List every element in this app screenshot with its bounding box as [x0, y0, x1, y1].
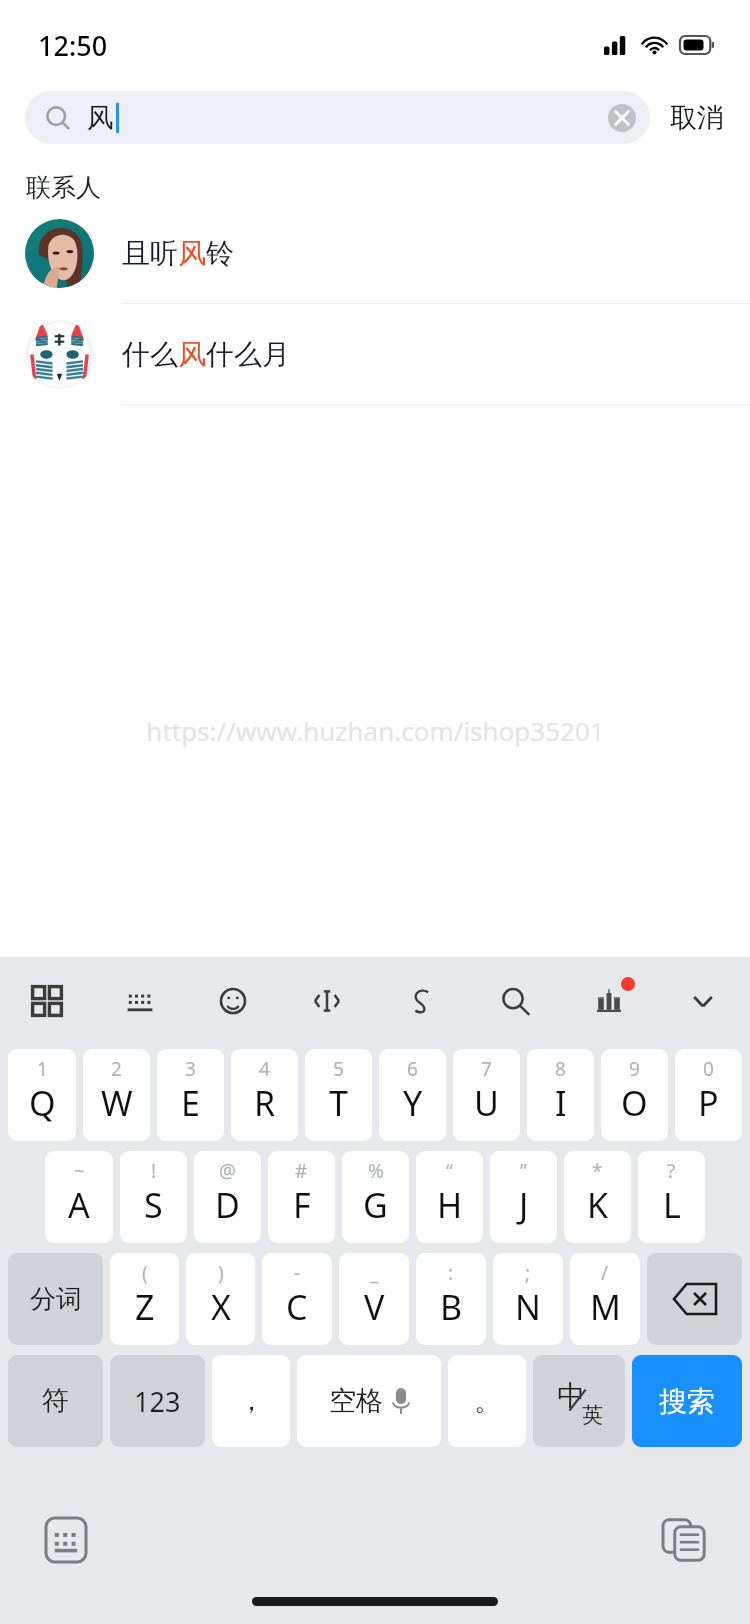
- staticText: U: [474, 1080, 499, 1126]
- staticText: 符: [42, 1384, 69, 1418]
- staticText: S: [144, 1182, 163, 1228]
- button[interactable]: Switch keyboard: [40, 1514, 92, 1566]
- staticText: 7: [481, 1056, 492, 1082]
- staticText: H: [437, 1182, 463, 1228]
- button[interactable]: 2: [83, 1049, 150, 1141]
- staticText: 且听风铃: [122, 236, 234, 271]
- button[interactable]: (: [110, 1253, 179, 1345]
- staticText: 中: [557, 1378, 585, 1413]
- staticText: G: [363, 1182, 388, 1228]
- button[interactable]: :: [416, 1253, 486, 1345]
- button[interactable]: #: [268, 1151, 335, 1243]
- staticText: 空格: [329, 1384, 383, 1418]
- button[interactable]: _: [339, 1253, 409, 1345]
- button[interactable]: -: [262, 1253, 332, 1345]
- staticText: T: [329, 1080, 348, 1126]
- staticText: 搜索: [659, 1384, 715, 1419]
- button[interactable]: @: [194, 1151, 261, 1243]
- button[interactable]: Clipboard: [658, 1514, 710, 1566]
- button[interactable]: Theme: [562, 957, 656, 1045]
- button[interactable]: 符: [8, 1355, 103, 1447]
- button[interactable]: ?: [638, 1151, 705, 1243]
- staticText: 2: [111, 1056, 122, 1082]
- staticText: !: [151, 1158, 157, 1184]
- button[interactable]: Emoji: [186, 957, 280, 1045]
- staticText: :: [448, 1260, 454, 1286]
- staticText: J: [519, 1182, 529, 1228]
- button[interactable]: 什么风什么月: [0, 304, 750, 405]
- staticText: @: [219, 1158, 237, 1184]
- button[interactable]: 5: [305, 1049, 372, 1141]
- button[interactable]: 风: [25, 91, 650, 144]
- staticText: 4: [259, 1056, 270, 1082]
- staticText: ?: [667, 1158, 676, 1184]
- button[interactable]: 且听风铃: [0, 203, 750, 304]
- staticText: Y: [403, 1080, 423, 1126]
- button[interactable]: 4: [231, 1049, 298, 1141]
- button[interactable]: Grid: [0, 957, 93, 1045]
- staticText: E: [181, 1080, 200, 1126]
- button[interactable]: 6: [379, 1049, 446, 1141]
- button[interactable]: ~: [45, 1151, 113, 1243]
- staticText: #: [295, 1158, 308, 1184]
- button[interactable]: ”: [490, 1151, 557, 1243]
- button[interactable]: %: [342, 1151, 409, 1243]
- button[interactable]: Clear text: [600, 96, 644, 140]
- button[interactable]: 9: [601, 1049, 668, 1141]
- button[interactable]: ，: [212, 1355, 290, 1447]
- button[interactable]: 。: [448, 1355, 526, 1447]
- staticText: R: [254, 1080, 276, 1126]
- button[interactable]: ;: [493, 1253, 563, 1345]
- staticText: 0: [703, 1056, 714, 1082]
- button[interactable]: ): [186, 1253, 255, 1345]
- staticText: P: [698, 1080, 719, 1126]
- staticText: 8: [555, 1056, 566, 1082]
- staticText: ;: [525, 1260, 531, 1286]
- staticText: “: [446, 1158, 453, 1184]
- staticText: /: [601, 1260, 609, 1286]
- staticText: I: [555, 1080, 567, 1126]
- staticText: 123: [134, 1383, 181, 1420]
- staticText: N: [515, 1284, 541, 1330]
- staticText: K: [587, 1182, 609, 1228]
- staticText: ，: [238, 1384, 265, 1418]
- button[interactable]: 123: [110, 1355, 205, 1447]
- staticText: B: [440, 1284, 463, 1330]
- staticText: Q: [29, 1080, 56, 1126]
- staticText: 取消: [670, 101, 724, 135]
- staticText: V: [364, 1284, 385, 1330]
- staticText: _: [370, 1260, 379, 1286]
- staticText: ): [218, 1260, 224, 1286]
- button[interactable]: 空格: [297, 1355, 441, 1447]
- staticText: 5: [333, 1056, 344, 1082]
- button[interactable]: 搜索: [632, 1355, 742, 1447]
- staticText: 分词: [30, 1283, 82, 1316]
- staticText: M: [590, 1284, 621, 1330]
- button[interactable]: 中: [533, 1355, 625, 1447]
- staticText: Z: [135, 1284, 155, 1330]
- staticText: ”: [520, 1158, 527, 1184]
- button[interactable]: /: [570, 1253, 640, 1345]
- button[interactable]: 1: [8, 1049, 76, 1141]
- button[interactable]: 8: [527, 1049, 594, 1141]
- staticText: ~: [74, 1158, 85, 1184]
- button[interactable]: Cursor: [280, 957, 374, 1045]
- button[interactable]: 0: [675, 1049, 742, 1141]
- staticText: A: [68, 1182, 90, 1228]
- button[interactable]: Search: [468, 957, 562, 1045]
- button[interactable]: !: [120, 1151, 187, 1243]
- button[interactable]: “: [416, 1151, 483, 1243]
- button[interactable]: *: [564, 1151, 631, 1243]
- button[interactable]: Keyboard: [93, 957, 186, 1045]
- staticText: L: [663, 1182, 681, 1228]
- button[interactable]: Hide keyboard: [656, 957, 750, 1045]
- button[interactable]: 3: [157, 1049, 224, 1141]
- button[interactable]: 分词: [8, 1253, 103, 1345]
- staticText: 什么风什么月: [122, 337, 290, 372]
- button[interactable]: 取消: [654, 91, 740, 144]
- button[interactable]: 7: [453, 1049, 520, 1141]
- staticText: 。: [474, 1384, 501, 1418]
- button[interactable]: Attachment: [374, 957, 468, 1045]
- button[interactable]: Backspace: [647, 1253, 742, 1345]
- staticText: D: [215, 1182, 240, 1228]
